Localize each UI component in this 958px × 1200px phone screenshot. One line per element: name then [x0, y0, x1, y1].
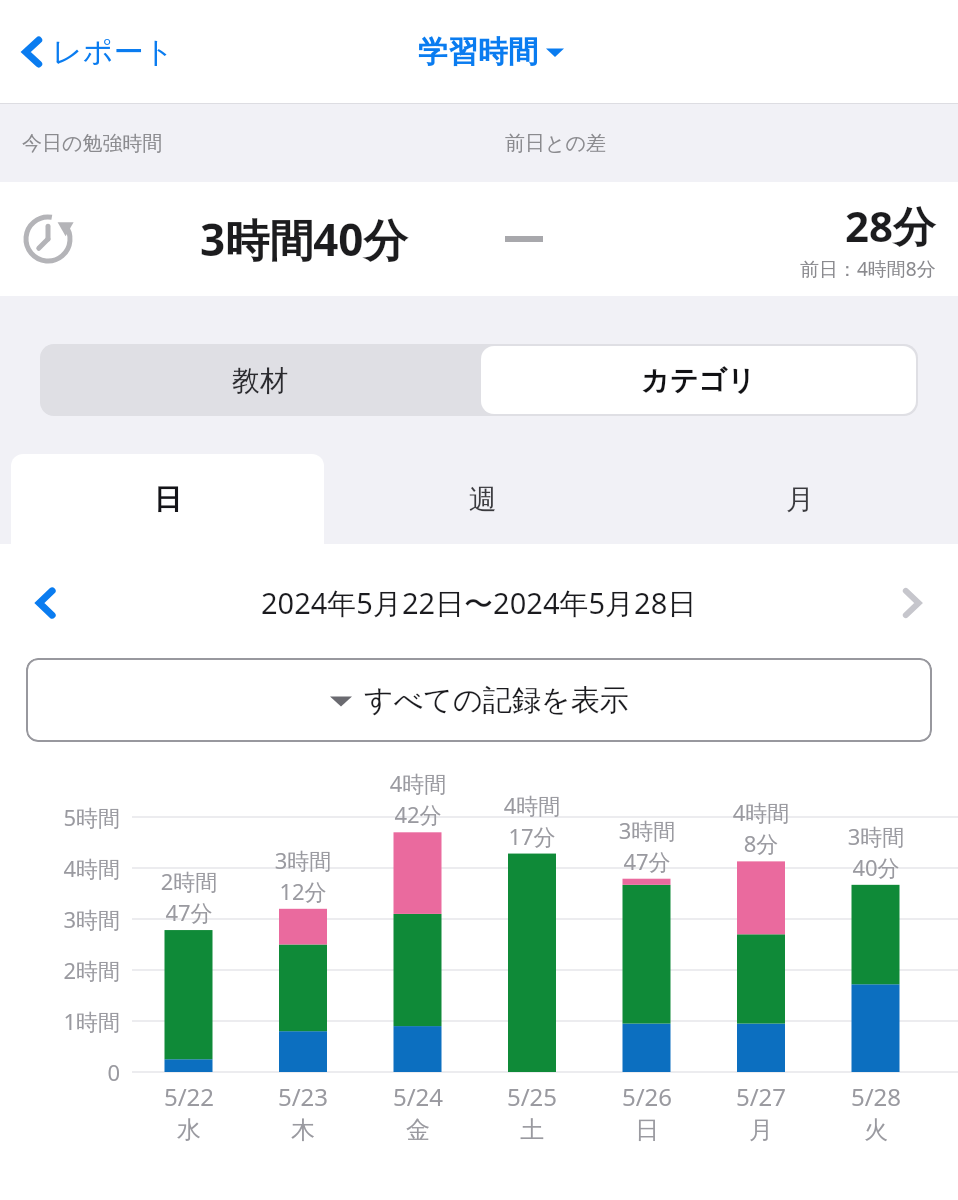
- staticText: 前日：4時間8分: [800, 256, 936, 282]
- staticText: 4時間 42分: [361, 768, 475, 829]
- staticText: 1時間: [20, 1006, 120, 1036]
- button[interactable]: レポート: [14, 26, 181, 78]
- staticText: 4時間: [20, 853, 120, 883]
- staticText: 前日との差: [505, 131, 606, 156]
- staticText: 4時間 17分: [475, 790, 589, 851]
- staticText: 5時間: [20, 802, 120, 832]
- button[interactable]: Next week: [884, 575, 940, 631]
- staticText: 5/27 月: [704, 1080, 818, 1146]
- staticText: 5/25 土: [475, 1080, 589, 1146]
- button[interactable]: すべての記録を表示: [26, 658, 932, 742]
- staticText: 教材: [232, 363, 288, 398]
- staticText: 5/24 金: [361, 1080, 475, 1146]
- staticText: 5/22 水: [132, 1080, 246, 1146]
- button[interactable]: Previous week: [18, 575, 74, 631]
- other: History: [22, 213, 74, 265]
- staticText: すべての記録を表示: [364, 682, 629, 719]
- button[interactable]: 教材: [40, 344, 479, 416]
- button[interactable]: カテゴリ: [481, 346, 916, 414]
- button[interactable]: 日: [11, 454, 324, 544]
- button[interactable]: 週: [324, 454, 641, 544]
- staticText: 5/23 木: [246, 1080, 360, 1146]
- staticText: 3時間 12分: [246, 845, 360, 906]
- staticText: カテゴリ: [641, 363, 756, 398]
- staticText: 3時間: [20, 904, 120, 934]
- staticText: 週: [469, 482, 497, 517]
- staticText: 日: [154, 482, 182, 517]
- staticText: 2時間 47分: [132, 866, 246, 927]
- staticText: 3時間40分: [200, 209, 408, 269]
- button[interactable]: 月: [641, 454, 958, 544]
- staticText: 学習時間: [418, 33, 538, 71]
- staticText: 2024年5月22日〜2024年5月28日: [261, 583, 697, 623]
- staticText: 0: [20, 1057, 120, 1087]
- button[interactable]: 学習時間: [412, 27, 570, 77]
- staticText: 2時間: [20, 955, 120, 985]
- staticText: レポート: [52, 33, 175, 71]
- staticText: 今日の勉強時間: [22, 131, 163, 156]
- staticText: 月: [786, 482, 814, 517]
- staticText: 28分: [845, 197, 936, 254]
- staticText: 5/28 火: [819, 1080, 933, 1146]
- staticText: 5/26 日: [590, 1080, 704, 1146]
- staticText: 3時間 40分: [819, 821, 933, 882]
- staticText: 3時間 47分: [590, 815, 704, 876]
- staticText: 4時間 8分: [704, 797, 818, 858]
